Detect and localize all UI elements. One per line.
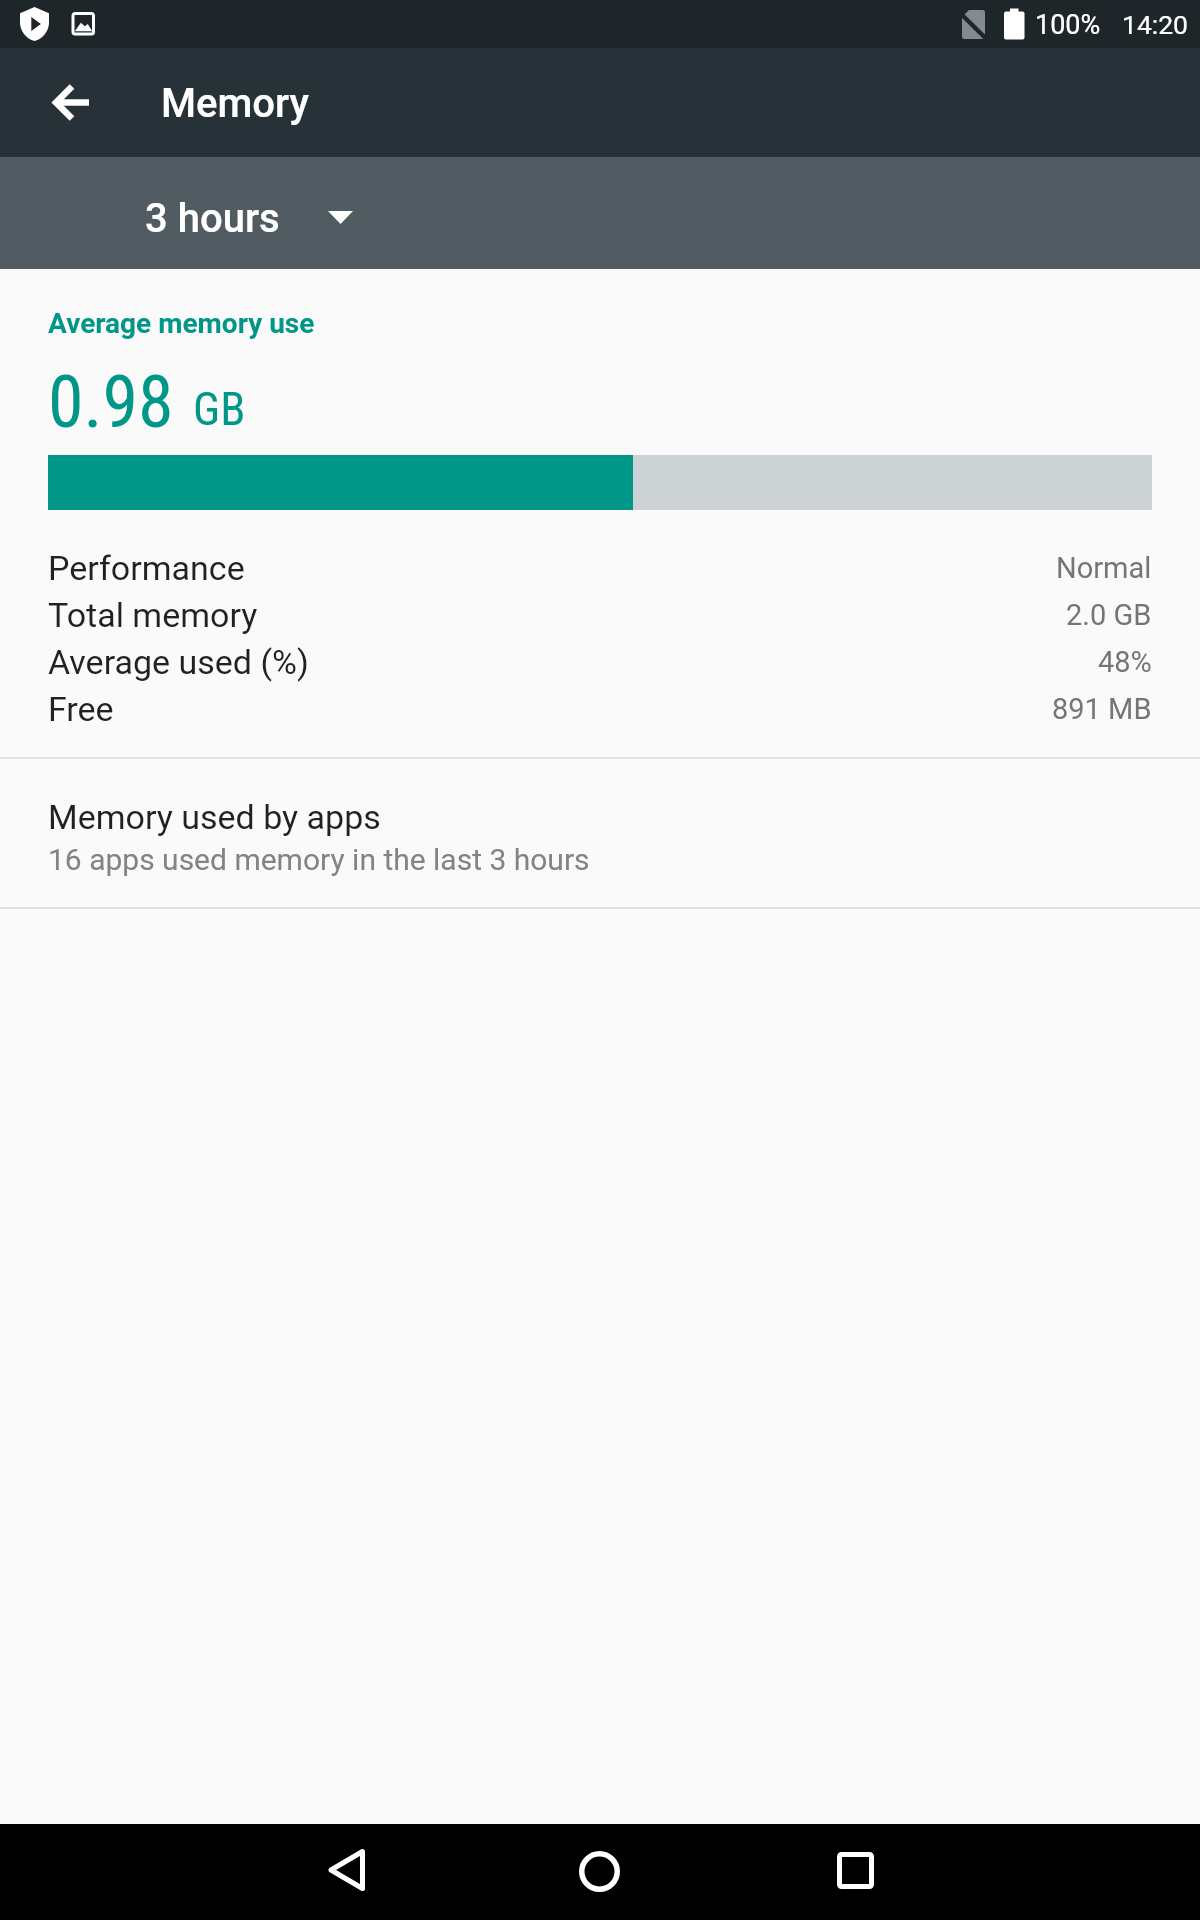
staticText: 891 MB <box>1052 692 1152 726</box>
staticText: Free <box>48 689 114 729</box>
staticText: 14:20 <box>1122 9 1188 40</box>
staticText: 0.98 <box>48 360 174 444</box>
button[interactable]: 3 hours <box>120 177 400 249</box>
button[interactable]: Average used (%) <box>48 638 1152 685</box>
staticText: Memory <box>161 80 309 127</box>
staticText: Total memory <box>48 595 258 635</box>
button[interactable] <box>38 68 106 136</box>
button[interactable]: Performance <box>48 544 1152 591</box>
staticText: Memory used by apps <box>48 797 381 837</box>
staticText: 100% <box>1035 9 1101 41</box>
staticText: Average used (%) <box>48 642 309 682</box>
button[interactable]: Total memory <box>48 591 1152 638</box>
staticText: Performance <box>48 548 245 588</box>
staticText: 2.0 GB <box>1066 598 1152 632</box>
button[interactable]: Memory used by apps <box>0 759 1200 906</box>
staticText: GB <box>193 382 246 436</box>
staticText: 16 apps used memory in the last 3 hours <box>48 842 590 877</box>
button[interactable]: Free <box>48 685 1152 732</box>
staticText: Normal <box>1056 551 1152 585</box>
button[interactable] <box>562 1834 638 1910</box>
staticText: 3 hours <box>145 195 280 242</box>
button[interactable] <box>818 1834 894 1910</box>
button[interactable] <box>310 1834 386 1910</box>
staticText: Average memory use <box>48 307 315 340</box>
staticText: 48% <box>1098 645 1152 679</box>
